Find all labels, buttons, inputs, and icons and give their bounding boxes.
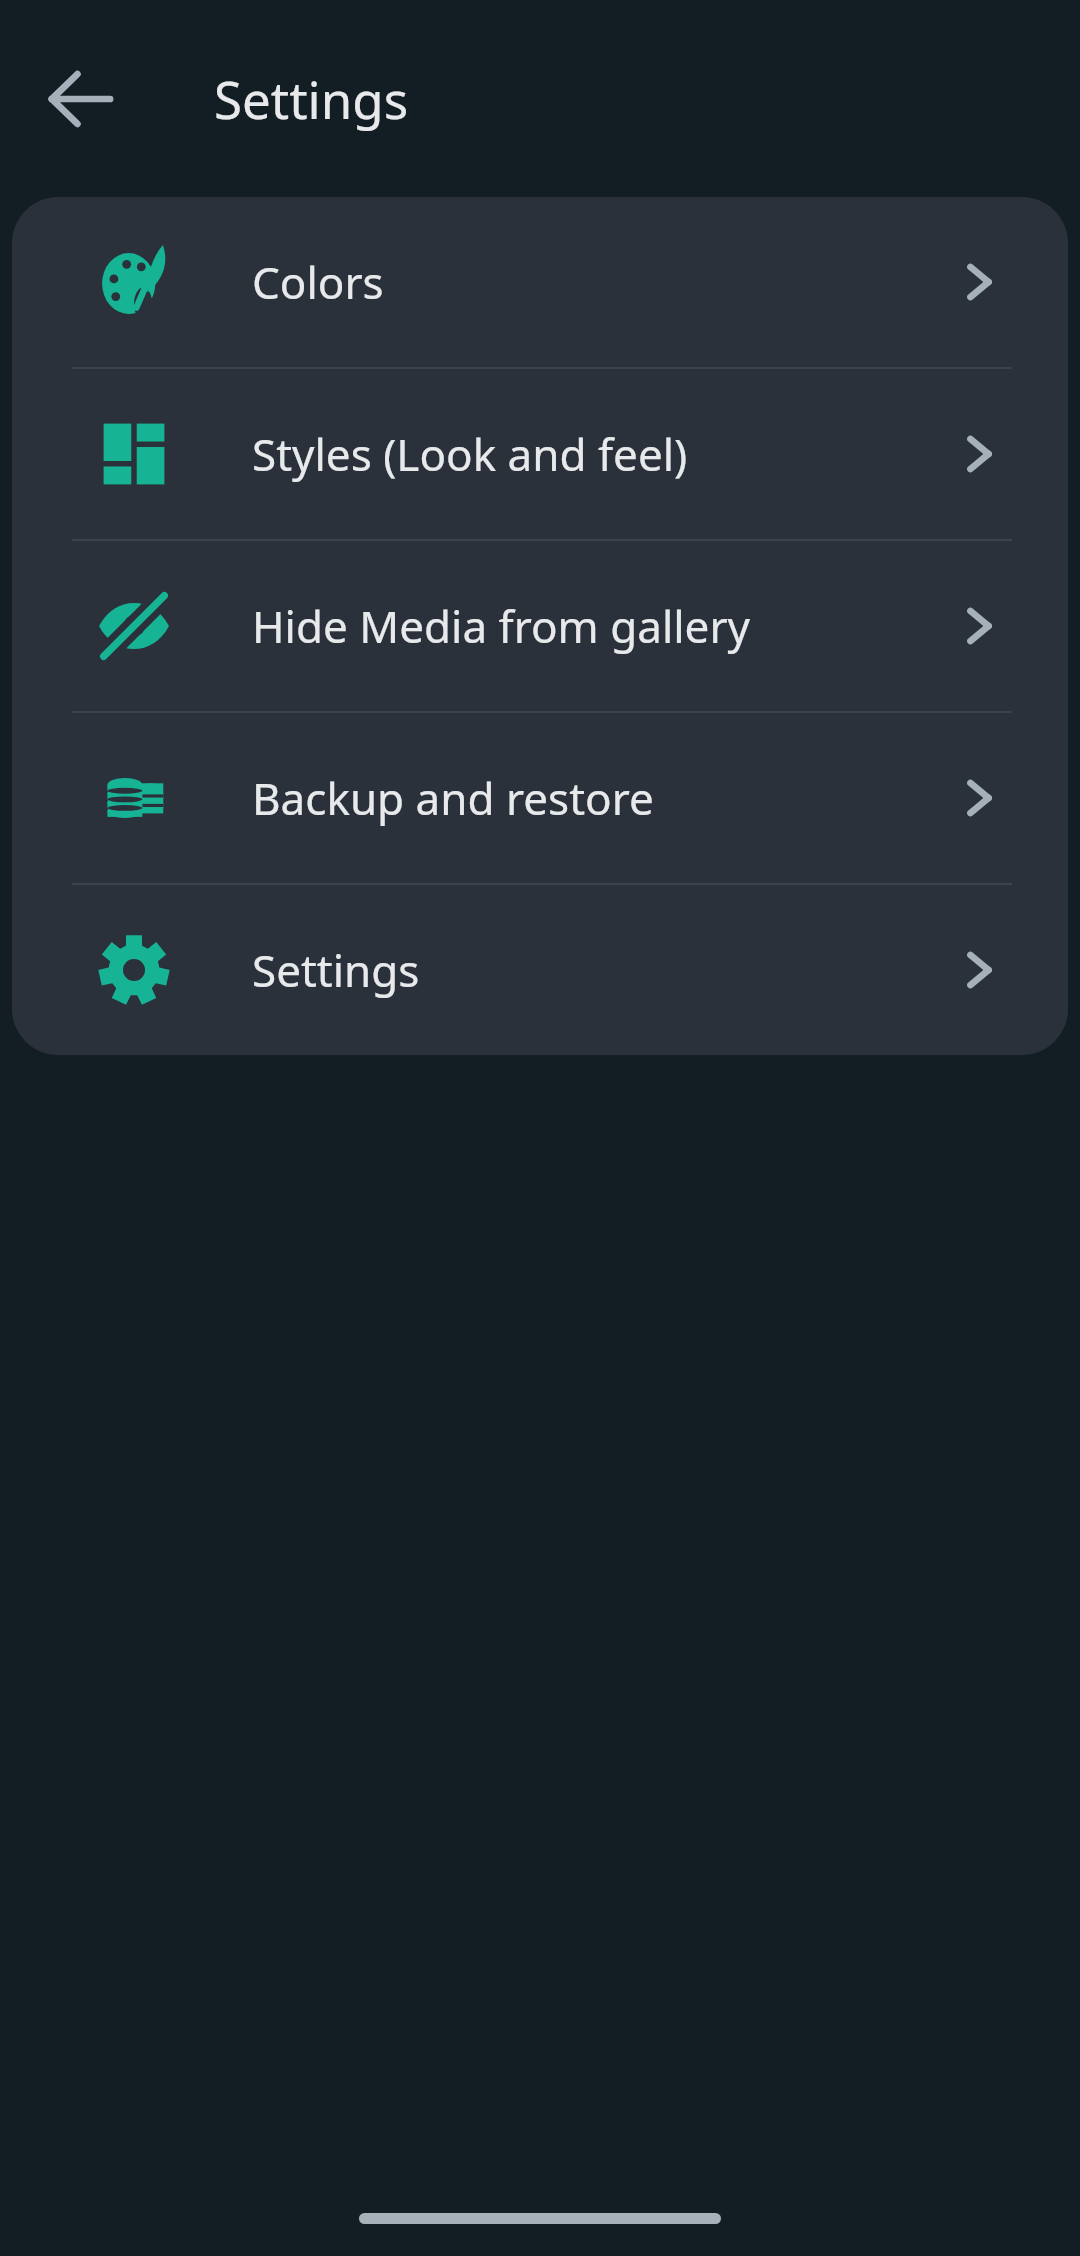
button[interactable]: Hide Media from gallery xyxy=(12,541,1068,711)
staticText: Styles (Look and feel) xyxy=(252,424,954,484)
button[interactable]: Back xyxy=(29,48,131,150)
button[interactable]: Styles (Look and feel) xyxy=(12,369,1068,539)
staticText: Hide Media from gallery xyxy=(252,596,954,656)
staticText: Colors xyxy=(252,252,954,312)
staticText: Backup and restore xyxy=(252,768,954,828)
button[interactable]: Colors xyxy=(12,197,1068,367)
staticText: Settings xyxy=(252,940,954,1000)
staticText: Settings xyxy=(214,64,409,133)
button[interactable]: Settings xyxy=(12,885,1068,1055)
button[interactable]: Backup and restore xyxy=(12,713,1068,883)
